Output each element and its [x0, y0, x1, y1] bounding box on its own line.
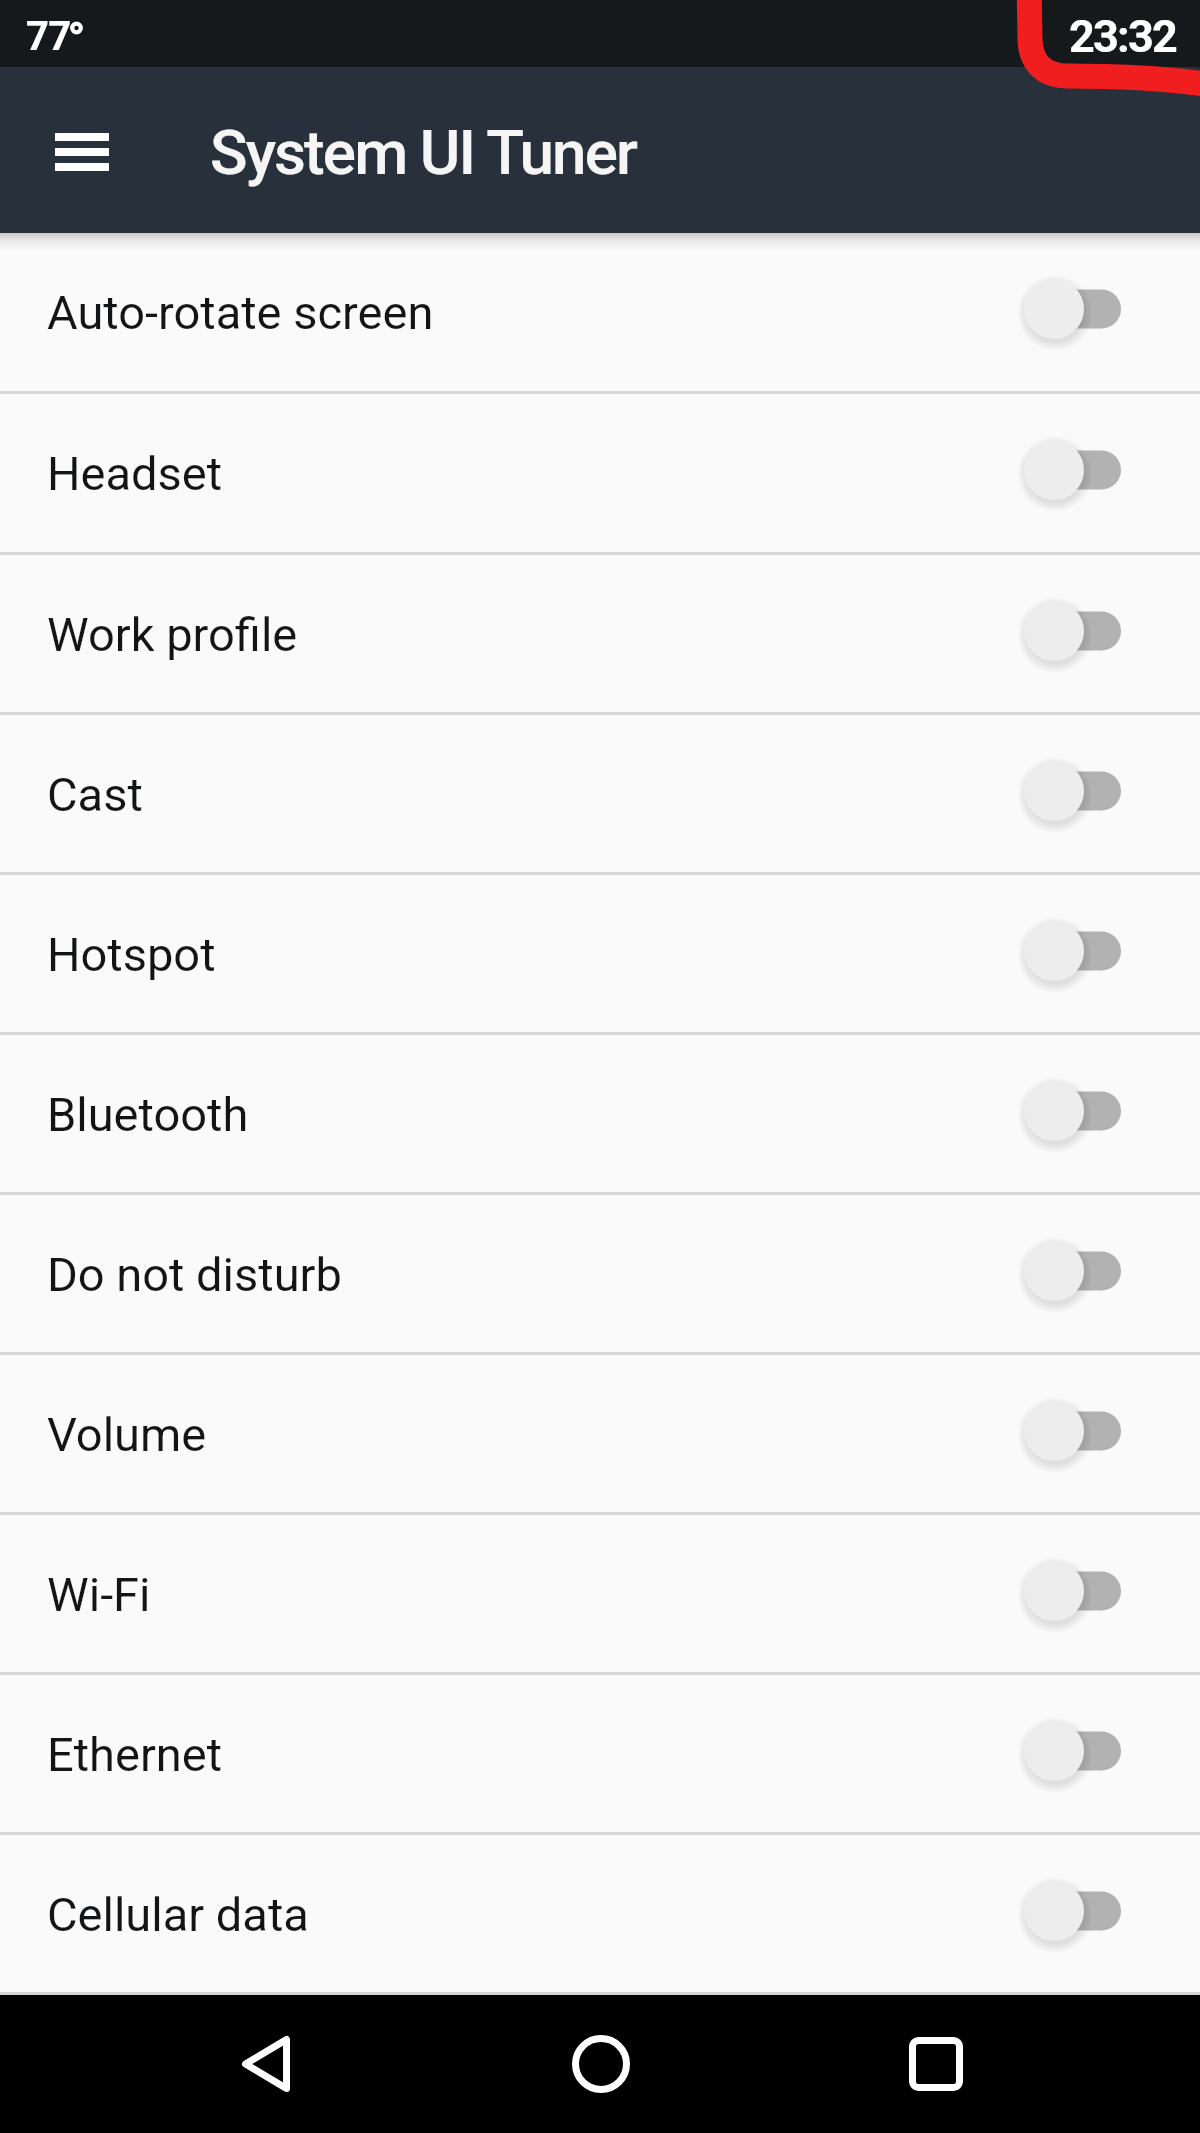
staticText: Volume	[47, 1407, 1024, 1462]
button[interactable]: Cellular data	[0, 1835, 1200, 1995]
staticText: 77	[26, 13, 71, 60]
staticText: System UI Tuner	[210, 116, 637, 189]
button[interactable]: Cast	[0, 715, 1200, 875]
staticText: Hotspot	[47, 927, 1024, 982]
button[interactable]: Home	[433, 1995, 768, 2133]
button[interactable]: Open navigation drawer	[28, 98, 136, 206]
staticText: Headset	[47, 446, 1024, 501]
staticText: Ethernet	[47, 1727, 1024, 1782]
button[interactable]: Recent apps	[768, 1995, 1103, 2133]
staticText: Auto-rotate screen	[47, 285, 1024, 340]
button[interactable]: Hotspot	[0, 875, 1200, 1035]
staticText: Cellular data	[47, 1887, 1024, 1942]
button[interactable]: Auto-rotate screen	[0, 233, 1200, 394]
button[interactable]: Work profile	[0, 555, 1200, 715]
button[interactable]: Bluetooth	[0, 1035, 1200, 1195]
button[interactable]: Wi-Fi	[0, 1515, 1200, 1675]
button[interactable]: Volume	[0, 1355, 1200, 1515]
staticText: Work profile	[47, 607, 1024, 662]
button[interactable]: Headset	[0, 394, 1200, 555]
button[interactable]: Do not disturb	[0, 1195, 1200, 1355]
staticText: Cast	[47, 767, 1024, 822]
button[interactable]: Ethernet	[0, 1675, 1200, 1835]
staticText: Do not disturb	[47, 1247, 1024, 1302]
staticText: Wi-Fi	[47, 1567, 1024, 1622]
staticText: Bluetooth	[47, 1087, 1024, 1142]
staticText: 23:32	[1069, 10, 1176, 63]
button[interactable]: Back	[98, 1995, 433, 2133]
